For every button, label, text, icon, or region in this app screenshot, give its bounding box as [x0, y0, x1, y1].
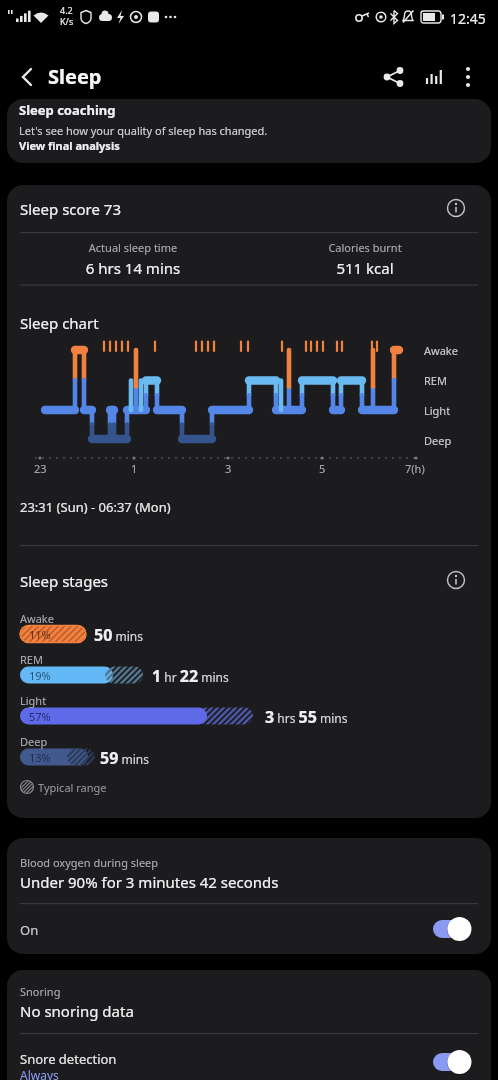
button[interactable]: [453, 61, 483, 93]
staticText: Sleep chart: [20, 313, 99, 333]
staticText: 6 hrs 14 mins: [20, 258, 246, 818]
staticText: No snoring data: [20, 1001, 134, 1021]
staticText: Under 90% for 3 minutes 42 seconds: [20, 872, 279, 892]
staticText: Calories burnt: [252, 240, 478, 818]
staticText: 7(h): [405, 461, 425, 476]
staticText: Blood oxygen during sleep: [20, 855, 159, 870]
staticText: Light: [20, 693, 47, 708]
staticText: 59 mins: [100, 747, 149, 769]
staticText: Typical range: [38, 780, 107, 795]
staticText: Always: [20, 1067, 59, 1080]
staticText: Let's see how your quality of sleep has …: [19, 123, 268, 138]
staticText: Sleep: [48, 63, 102, 90]
staticText: Sleep stages: [20, 571, 109, 591]
staticText: REM: [20, 652, 43, 667]
staticText: 3 hrs 55 mins: [265, 706, 348, 728]
staticText: Actual sleep time: [20, 240, 246, 818]
button[interactable]: [440, 564, 472, 596]
staticText: 1: [131, 461, 138, 476]
button[interactable]: [10, 61, 44, 95]
staticText: Awake: [424, 343, 458, 358]
staticText: 511 kcal: [252, 258, 478, 818]
button[interactable]: [440, 192, 472, 224]
staticText: Snore detection: [20, 1050, 117, 1068]
button[interactable]: [419, 61, 451, 93]
staticText: Sleep score 73: [20, 199, 122, 219]
staticText: REM: [424, 373, 447, 388]
button[interactable]: [7, 1034, 491, 1080]
staticText: Deep: [424, 433, 452, 448]
staticText: 3: [225, 461, 232, 476]
staticText: 13%: [29, 750, 51, 765]
button[interactable]: [7, 904, 491, 954]
staticText: Snoring: [20, 984, 61, 999]
staticText: 5: [319, 461, 326, 476]
button[interactable]: Sleep coaching: [7, 99, 491, 163]
staticText: Deep: [20, 734, 48, 749]
staticText: 19%: [29, 668, 51, 683]
staticText: Awake: [20, 611, 54, 626]
staticText: 23:31 (Sun) - 06:37 (Mon): [20, 498, 171, 516]
staticText: 4.2: [60, 4, 73, 16]
staticText: 57%: [29, 709, 51, 724]
staticText: 23: [34, 461, 47, 476]
staticText: 1 hr 22 mins: [152, 665, 229, 687]
staticText: 12:45: [450, 9, 486, 28]
staticText: View final analysis: [19, 138, 120, 153]
button[interactable]: [377, 61, 409, 93]
staticText: 11%: [29, 627, 51, 642]
staticText: 50 mins: [94, 624, 143, 646]
staticText: On: [20, 921, 39, 939]
staticText: K/s: [60, 15, 74, 27]
staticText: Sleep coaching: [19, 101, 116, 119]
staticText: Light: [424, 403, 451, 418]
